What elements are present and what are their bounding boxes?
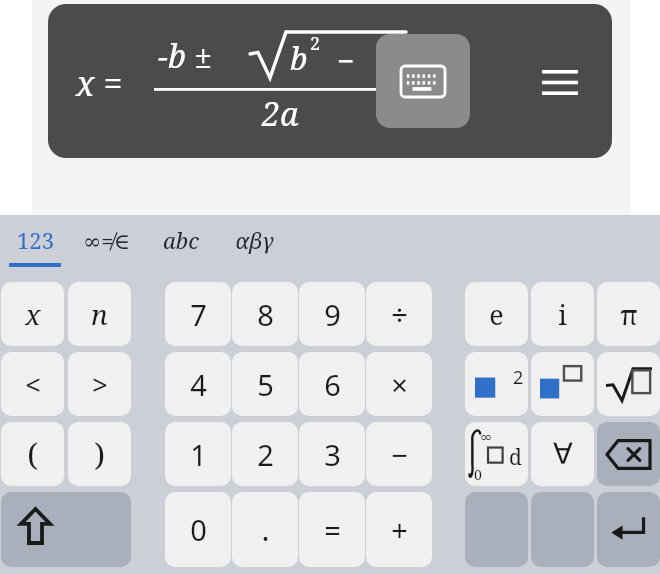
button[interactable]: Power: [531, 352, 594, 416]
button[interactable]: Integral: [465, 422, 528, 486]
button[interactable]: 7: [165, 282, 231, 346]
button[interactable]: abc: [148, 215, 214, 277]
button[interactable]: 8: [232, 282, 298, 346]
staticText: π: [620, 296, 638, 333]
staticText: =: [324, 510, 341, 549]
staticText: 9: [324, 295, 341, 334]
staticText: x: [25, 295, 41, 333]
staticText: 8: [257, 295, 274, 334]
staticText: −: [391, 435, 408, 474]
staticText: abc: [163, 225, 199, 255]
staticText: 0: [190, 510, 207, 549]
staticText: 4: [190, 365, 207, 404]
button[interactable]: Enter: [597, 492, 660, 567]
staticText: 2: [257, 435, 274, 474]
staticText: ∞≠∈: [83, 225, 130, 255]
staticText: ×: [391, 365, 408, 404]
button[interactable]: (: [1, 422, 64, 486]
button[interactable]: −: [366, 422, 432, 486]
button[interactable]: 3: [299, 422, 365, 486]
button[interactable]: Shift: [1, 492, 131, 567]
button[interactable]: n: [68, 282, 131, 346]
staticText: ): [94, 433, 105, 475]
staticText: e: [489, 296, 504, 333]
button[interactable]: 2: [232, 422, 298, 486]
button[interactable]: +: [366, 492, 432, 567]
button[interactable]: 0: [165, 492, 231, 567]
button[interactable]: 6: [299, 352, 365, 416]
staticText: ∀: [553, 437, 573, 471]
button[interactable]: <: [1, 352, 64, 416]
staticText: +: [391, 510, 408, 549]
button[interactable]: αβγ: [218, 215, 290, 277]
button[interactable]: ×: [366, 352, 432, 416]
staticText: αβγ: [235, 225, 274, 255]
button[interactable]: >: [68, 352, 131, 416]
staticText: <: [25, 366, 41, 403]
staticText: 7: [190, 295, 207, 334]
staticText: 2a: [262, 92, 299, 136]
button[interactable]: =: [299, 492, 365, 567]
staticText: b: [290, 37, 308, 79]
staticText: (: [27, 433, 38, 475]
staticText: −: [337, 40, 355, 81]
button[interactable]: Move left: [465, 492, 528, 567]
staticText: ∞: [480, 428, 493, 445]
button[interactable]: x: [1, 282, 64, 346]
staticText: −b ±: [158, 34, 213, 78]
button[interactable]: 4: [165, 352, 231, 416]
button[interactable]: ÷: [366, 282, 432, 346]
button[interactable]: 9: [299, 282, 365, 346]
staticText: 3: [324, 435, 341, 474]
button[interactable]: Square root: [597, 352, 660, 416]
staticText: n: [91, 295, 108, 333]
staticText: x =: [76, 60, 123, 106]
staticText: i: [558, 296, 567, 333]
button[interactable]: Toggle keyboard: [376, 34, 470, 128]
staticText: 1: [190, 435, 207, 474]
staticText: >: [92, 366, 108, 403]
staticText: 123: [17, 225, 54, 255]
button[interactable]: 5: [232, 352, 298, 416]
button[interactable]: π: [597, 282, 660, 346]
button[interactable]: ): [68, 422, 131, 486]
staticText: 5: [257, 365, 274, 404]
staticText: 2: [513, 365, 524, 390]
button[interactable]: ∀: [531, 422, 594, 486]
staticText: 2: [310, 31, 321, 56]
button[interactable]: 123: [4, 215, 66, 277]
staticText: d: [509, 443, 522, 472]
button[interactable]: i: [531, 282, 594, 346]
button[interactable]: Move right: [531, 492, 594, 567]
staticText: .: [261, 509, 270, 550]
staticText: 6: [324, 365, 341, 404]
button[interactable]: ∞≠∈: [66, 215, 146, 277]
button[interactable]: e: [465, 282, 528, 346]
button[interactable]: Backspace: [597, 422, 660, 486]
staticText: ÷: [391, 295, 408, 334]
button[interactable]: .: [232, 492, 298, 567]
button[interactable]: 1: [165, 422, 231, 486]
button[interactable]: Menu: [526, 48, 594, 116]
button[interactable]: Square: [465, 352, 528, 416]
staticText: 0: [474, 465, 482, 484]
